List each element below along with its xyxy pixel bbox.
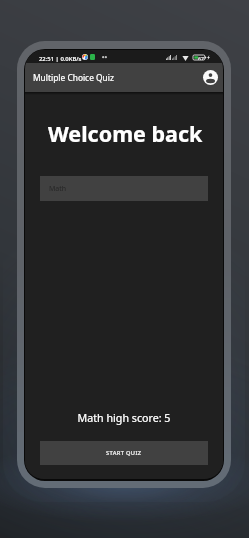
button[interactable]: Account — [199, 66, 222, 89]
staticText: Welcome back — [48, 119, 223, 148]
staticText: 67 — [198, 55, 204, 60]
button[interactable]: START QUIZ — [40, 441, 208, 465]
staticText: Multiple Choice Quiz — [33, 72, 114, 83]
staticText: 22:51 | 0.0KB/s — [39, 55, 82, 63]
staticText: START QUIZ — [106, 449, 142, 457]
staticText: Math high score: 5 — [25, 411, 223, 426]
staticText: Math — [49, 184, 67, 194]
